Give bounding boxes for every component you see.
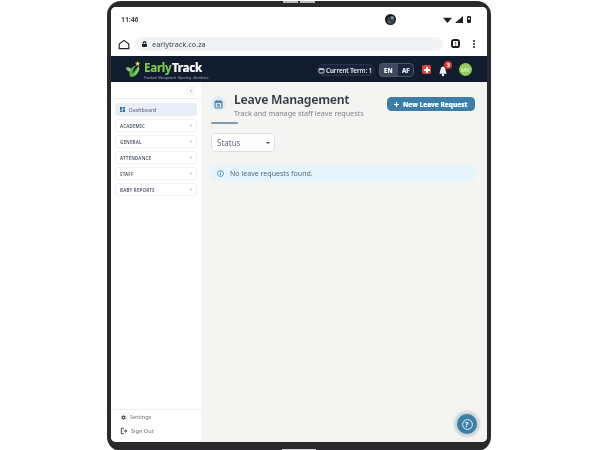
staticText: New Leave Request [403,100,468,109]
button[interactable]: Status [211,133,275,152]
staticText: 5 [447,62,450,69]
button[interactable]: Dashboard [115,103,197,116]
button[interactable]: ATTENDANCE [115,151,197,164]
button[interactable]: STAFF [115,167,197,180]
button[interactable]: Sign Out [111,424,201,438]
button[interactable]: Home [116,36,132,52]
button[interactable]: MV [459,63,472,76]
staticText: ATTENDANCE [120,155,152,161]
button[interactable]: Current Term: 1 [317,64,375,76]
staticText: Dashboard [129,106,157,113]
staticText: Track and manage staff leave requests [234,108,364,118]
button[interactable]: Help [457,414,477,434]
button[interactable]: Tabs [450,38,461,49]
staticText: GENERAL [120,139,142,145]
staticText: AF [402,66,410,75]
staticText: MV [461,66,470,73]
staticText: Settings [130,413,152,421]
staticText: Preschool Management · Reporting · Atten… [144,76,209,80]
staticText: EN [384,66,393,75]
staticText: Early [144,60,172,76]
staticText: Leave Management [234,91,350,108]
staticText: Track [172,60,202,76]
button[interactable]: New Leave Request [387,97,475,111]
button[interactable]: Notifications [439,61,453,78]
staticText: earlytrack.co.za [152,39,206,49]
staticText: ? [465,419,469,429]
button[interactable]: earlytrack.co.za [134,37,443,51]
button[interactable]: AF [398,63,414,77]
staticText: No leave requests found. [230,168,313,178]
button[interactable]: ACADEMIC [115,119,197,132]
staticText: Sign Out [131,427,154,435]
staticText: STAFF [120,171,134,177]
staticText: 11:46 [121,15,139,24]
staticText: ACADEMIC [120,123,145,129]
staticText: Current Term: 1 [326,66,373,74]
button[interactable]: BABY REPORTS [115,183,197,196]
button[interactable]: Emergency [422,65,431,74]
button[interactable]: Collapse menu [186,86,195,95]
staticText: 1 [454,40,457,47]
staticText: BABY REPORTS [120,187,155,193]
button[interactable]: GENERAL [115,135,197,148]
staticText: Status [217,137,241,148]
button[interactable]: Settings [111,410,201,424]
button[interactable]: EN [379,63,398,77]
button[interactable]: More options [468,38,479,49]
